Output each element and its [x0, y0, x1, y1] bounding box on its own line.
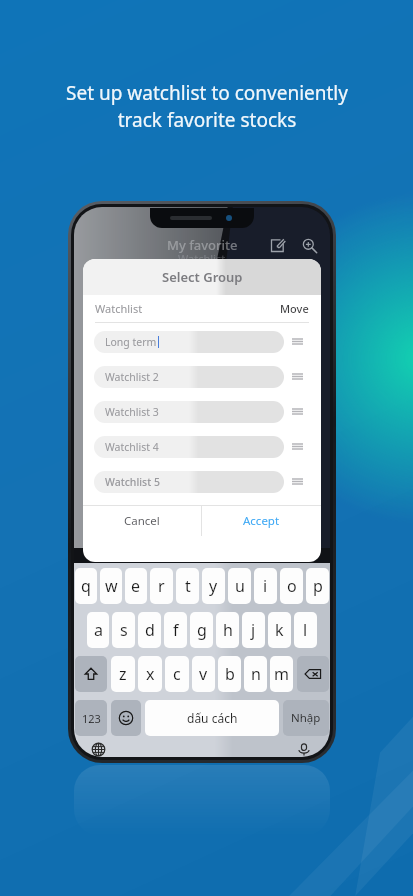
staticText: Set up watchlist to conveniently track f… [66, 80, 348, 133]
button[interactable]: Watchlist 2 [94, 366, 284, 388]
button[interactable]: Reorder Long term [284, 331, 310, 353]
button[interactable]: i [254, 568, 277, 604]
button[interactable]: t [176, 568, 199, 604]
button[interactable]: m [270, 656, 293, 692]
button[interactable]: Reorder Watchlist 4 [284, 436, 310, 458]
button[interactable]: Edit [264, 232, 290, 258]
button[interactable]: h [216, 612, 239, 648]
button[interactable]: l [294, 612, 317, 648]
staticText: p [313, 575, 323, 597]
button[interactable]: Nhập [283, 700, 329, 736]
staticText: l [303, 619, 308, 641]
button[interactable]: dấu cách [145, 700, 279, 736]
button[interactable]: Numbers [75, 700, 107, 736]
staticText: Watchlist [95, 301, 143, 316]
staticText: a [94, 619, 103, 641]
button[interactable]: Watchlist 3 [94, 401, 284, 423]
button[interactable]: Long term [94, 331, 284, 353]
button[interactable]: Reorder Watchlist 5 [284, 471, 310, 493]
staticText: w [105, 575, 118, 597]
staticText: Watchlist [178, 251, 226, 266]
button[interactable]: g [190, 612, 213, 648]
button[interactable]: s [112, 612, 135, 648]
staticText: t [185, 575, 191, 597]
button[interactable]: Watchlist 4 [94, 436, 284, 458]
staticText: Nhập [291, 710, 321, 726]
staticText: n [251, 663, 261, 685]
button[interactable]: e [125, 568, 147, 604]
staticText: Watchlist 4 [105, 440, 159, 454]
staticText: z [119, 663, 127, 685]
staticText: g [197, 619, 207, 641]
staticText: m [274, 663, 289, 685]
button[interactable]: Emoji [111, 700, 141, 736]
button[interactable]: f [164, 612, 187, 648]
staticText: x [146, 663, 155, 685]
staticText: o [287, 575, 297, 597]
button[interactable]: Accept [202, 506, 321, 536]
staticText: h [223, 619, 233, 641]
button[interactable]: z [111, 656, 135, 692]
staticText: k [275, 619, 284, 641]
staticText: Accept [243, 513, 280, 529]
staticText: r [158, 575, 165, 597]
button[interactable]: j [242, 612, 265, 648]
button[interactable]: a [87, 612, 109, 648]
button[interactable]: x [138, 656, 162, 692]
staticText: i [263, 575, 268, 597]
button[interactable]: Add [296, 232, 322, 258]
staticText: q [81, 575, 91, 597]
staticText: 123 [82, 711, 101, 726]
staticText: b [225, 663, 235, 685]
staticText: j [251, 619, 256, 641]
button[interactable]: p [306, 568, 329, 604]
button[interactable]: Backspace [297, 656, 329, 692]
button[interactable]: Reorder Watchlist 3 [284, 401, 310, 423]
staticText: v [199, 663, 208, 685]
button[interactable]: Shift [75, 656, 107, 692]
staticText: Select Group [162, 268, 243, 286]
staticText: y [209, 575, 218, 597]
button[interactable]: Cancel [83, 506, 201, 536]
button[interactable]: u [228, 568, 251, 604]
button[interactable]: r [150, 568, 173, 604]
button[interactable]: k [268, 612, 291, 648]
button[interactable]: Watchlist 5 [94, 471, 284, 493]
button[interactable]: v [192, 656, 215, 692]
button[interactable]: w [100, 568, 122, 604]
button[interactable]: o [280, 568, 303, 604]
staticText: f [173, 619, 179, 641]
staticText: My favorite [167, 236, 238, 254]
button[interactable]: Move [280, 301, 309, 316]
staticText: Watchlist 3 [105, 405, 159, 419]
staticText: dấu cách [187, 710, 238, 726]
button[interactable]: b [218, 656, 241, 692]
staticText: Cancel [124, 513, 160, 529]
button[interactable]: Reorder Watchlist 2 [284, 366, 310, 388]
staticText: d [145, 619, 155, 641]
staticText: Watchlist 5 [105, 475, 160, 489]
staticText: Watchlist 2 [105, 370, 159, 384]
staticText: e [131, 575, 141, 597]
staticText: s [120, 619, 128, 641]
button[interactable]: Voice input [292, 742, 316, 757]
button[interactable]: Language [88, 742, 112, 757]
staticText: u [235, 575, 245, 597]
staticText: Long term [105, 335, 157, 349]
staticText: c [173, 663, 181, 685]
button[interactable]: y [202, 568, 225, 604]
button[interactable]: n [244, 656, 267, 692]
button[interactable]: c [165, 656, 189, 692]
button[interactable]: q [75, 568, 97, 604]
button[interactable]: d [138, 612, 161, 648]
